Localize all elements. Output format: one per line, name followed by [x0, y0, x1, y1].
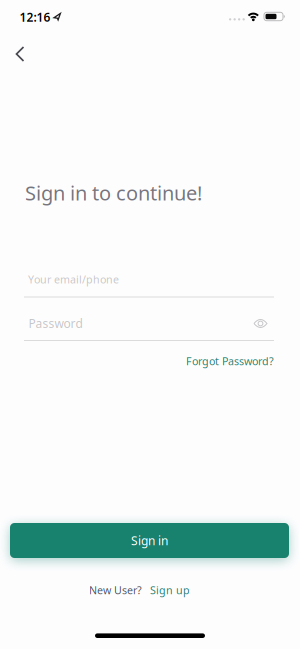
staticText: Forgot Password? — [186, 354, 274, 368]
staticText: Sign in to continue! — [25, 179, 202, 206]
staticText: Sign in — [131, 532, 168, 548]
staticText: 12:16 — [19, 9, 50, 25]
button[interactable]: Sign in — [10, 523, 289, 558]
button[interactable]: Sign up — [150, 583, 190, 597]
staticText: Sign up — [150, 583, 190, 597]
staticText: Your email/phone — [28, 272, 119, 286]
button[interactable]: Show password — [252, 316, 269, 330]
secureTextField[interactable]: Password — [24, 313, 274, 341]
staticText: New User? — [89, 583, 142, 597]
textField[interactable]: Your email/phone — [24, 270, 274, 297]
staticText: Password — [28, 315, 82, 331]
button[interactable]: Forgot Password? — [186, 354, 274, 368]
button[interactable]: Back — [8, 42, 32, 66]
